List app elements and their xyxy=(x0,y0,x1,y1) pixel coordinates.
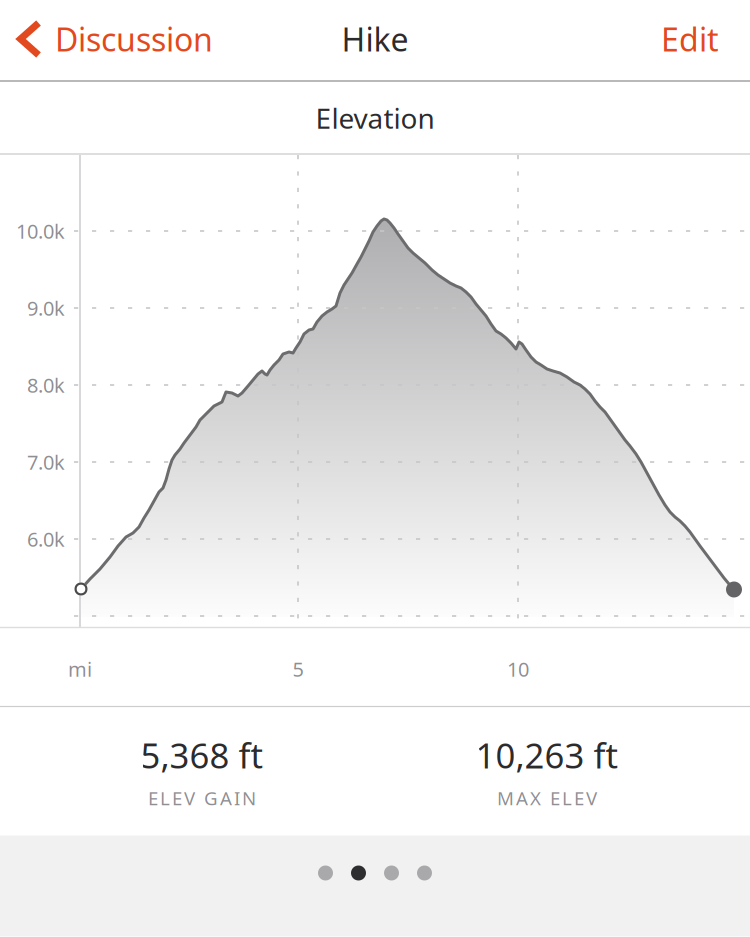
staticText: 8.0k xyxy=(27,372,65,398)
staticText: 9.0k xyxy=(27,295,65,321)
staticText: Elevation xyxy=(315,99,434,137)
staticText: E L E V G A I N xyxy=(148,786,256,810)
staticText: 6.0k xyxy=(27,526,65,552)
staticText: 10 xyxy=(507,656,529,682)
staticText: 10,263 ft xyxy=(475,732,618,778)
staticText: mi xyxy=(68,656,92,682)
staticText: Hike xyxy=(341,18,408,60)
staticText: 10.0k xyxy=(16,218,65,244)
staticText: 5,368 ft xyxy=(140,732,263,778)
button[interactable]: Edit xyxy=(643,0,750,79)
staticText: Discussion xyxy=(55,18,213,60)
staticText: 5 xyxy=(292,656,303,682)
button[interactable]: Discussion xyxy=(0,0,227,79)
staticText: M A X E L E V xyxy=(497,786,597,810)
staticText: 7.0k xyxy=(27,449,65,475)
staticText: Edit xyxy=(661,18,719,60)
